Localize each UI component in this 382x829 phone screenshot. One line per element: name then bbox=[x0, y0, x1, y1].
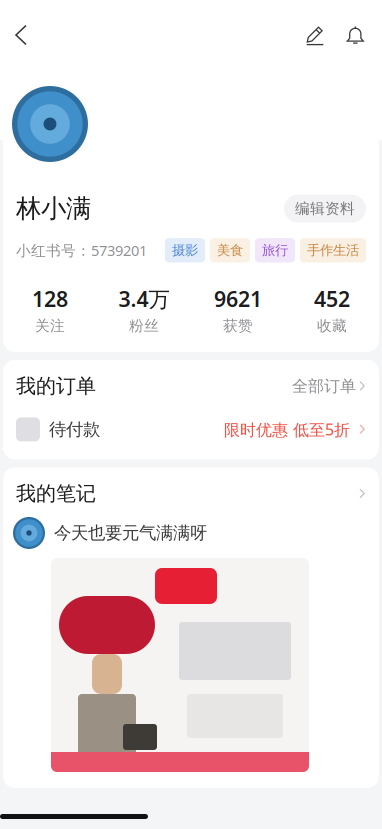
button[interactable]: 美食 bbox=[210, 238, 250, 262]
button[interactable] bbox=[356, 483, 366, 504]
button[interactable]: 今天也要元气满满呀 bbox=[3, 517, 379, 558]
staticText: 9621 bbox=[214, 284, 262, 313]
staticText: 限时优惠 低至5折 bbox=[224, 419, 350, 440]
staticText: 手作生活 bbox=[307, 242, 359, 258]
button[interactable]: 128 bbox=[3, 284, 97, 335]
staticText: 关注 bbox=[35, 317, 65, 335]
button[interactable]: 全部订单 bbox=[292, 376, 366, 396]
staticText: 128 bbox=[32, 284, 68, 313]
staticText: 今天也要元气满满呀 bbox=[54, 522, 207, 544]
button[interactable]: 3.4万 bbox=[97, 284, 191, 335]
button[interactable]: 通知 bbox=[335, 13, 376, 57]
staticText: 小红书号：5739201 bbox=[16, 241, 147, 260]
staticText: 我的笔记 bbox=[16, 481, 96, 506]
button[interactable]: 编辑 bbox=[295, 13, 335, 57]
staticText: 获赞 bbox=[223, 317, 253, 335]
staticText: 摄影 bbox=[172, 242, 198, 258]
staticText: 旅行 bbox=[262, 242, 288, 258]
staticText: 全部订单 bbox=[292, 376, 356, 396]
button[interactable]: 待付款 bbox=[3, 409, 379, 459]
button[interactable]: 452 bbox=[285, 284, 379, 335]
button[interactable]: 旅行 bbox=[255, 238, 295, 262]
staticText: 收藏 bbox=[317, 317, 347, 335]
staticText: 我的订单 bbox=[16, 374, 96, 398]
button[interactable]: 9621 bbox=[191, 284, 285, 335]
button[interactable]: 编辑资料 bbox=[284, 195, 366, 223]
button[interactable]: 笔记图片 bbox=[3, 558, 379, 788]
button[interactable]: 手作生活 bbox=[300, 238, 366, 262]
staticText: 美食 bbox=[217, 242, 243, 258]
staticText: 3.4万 bbox=[118, 284, 169, 313]
staticText: 林小满 bbox=[16, 193, 91, 224]
staticText: 编辑资料 bbox=[295, 200, 355, 218]
button[interactable]: 摄影 bbox=[165, 238, 205, 262]
staticText: 粉丝 bbox=[129, 317, 159, 335]
staticText: 452 bbox=[314, 284, 350, 313]
button[interactable]: 返回 bbox=[1, 13, 41, 57]
staticText: 待付款 bbox=[49, 419, 100, 440]
